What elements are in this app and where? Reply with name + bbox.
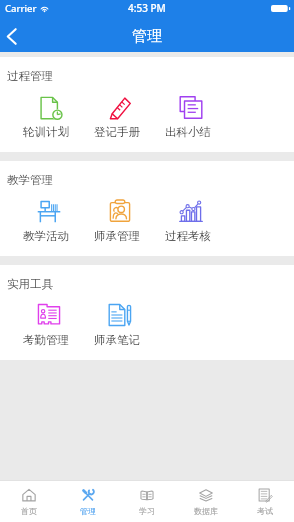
button[interactable]: 数据库 bbox=[176, 481, 235, 522]
button[interactable]: 考勤管理 bbox=[10, 303, 81, 360]
staticText: 考勤管理 bbox=[23, 333, 69, 347]
staticText: 师承管理 bbox=[94, 229, 140, 243]
staticText: 师承笔记 bbox=[94, 333, 140, 347]
button[interactable]: 登记手册 bbox=[81, 95, 152, 152]
staticText: 学习 bbox=[139, 506, 155, 516]
staticText: 过程考核 bbox=[165, 229, 211, 243]
staticText: 出科小结 bbox=[165, 125, 211, 139]
staticText: 管理 bbox=[80, 506, 96, 516]
staticText: 首页 bbox=[21, 506, 37, 516]
button[interactable]: 师承笔记 bbox=[81, 303, 152, 360]
button[interactable]: 师承管理 bbox=[81, 199, 152, 256]
staticText: 轮训计划 bbox=[23, 125, 69, 139]
staticText: 数据库 bbox=[194, 506, 218, 516]
staticText: 过程管理 bbox=[7, 69, 53, 83]
staticText: 实用工具 bbox=[7, 277, 53, 291]
button[interactable]: 管理 bbox=[58, 481, 117, 522]
button[interactable]: 考试 bbox=[235, 481, 294, 522]
staticText: 4:53 PM bbox=[128, 1, 166, 15]
button[interactable]: 出科小结 bbox=[152, 95, 223, 152]
staticText: 登记手册 bbox=[94, 125, 140, 139]
staticText: Carrier bbox=[5, 2, 37, 15]
button[interactable]: 过程考核 bbox=[152, 199, 223, 256]
staticText: 考试 bbox=[257, 506, 273, 516]
staticText: 教学活动 bbox=[23, 229, 69, 243]
button[interactable]: 教学活动 bbox=[10, 199, 81, 256]
button[interactable]: Back bbox=[0, 20, 23, 52]
button[interactable]: 学习 bbox=[117, 481, 176, 522]
button[interactable]: 首页 bbox=[0, 481, 58, 522]
staticText: 教学管理 bbox=[7, 173, 53, 187]
button[interactable]: 轮训计划 bbox=[10, 95, 81, 152]
staticText: 管理 bbox=[132, 27, 162, 46]
